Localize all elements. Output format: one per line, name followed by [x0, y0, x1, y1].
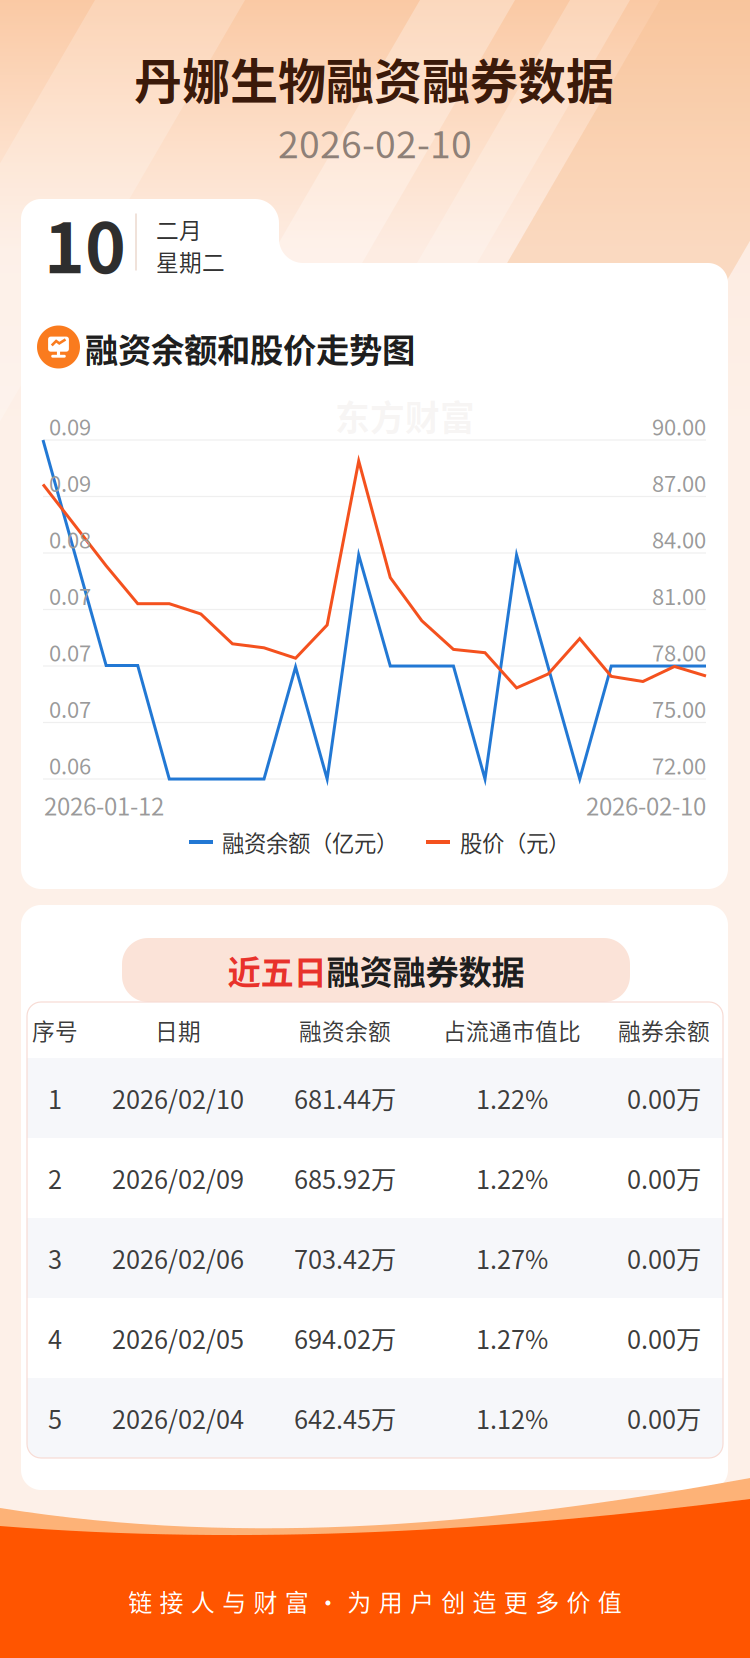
- staticText: 703.42万: [294, 1240, 396, 1276]
- staticText: 10: [44, 193, 126, 293]
- staticText: 84.00: [652, 523, 706, 555]
- staticText: 2026/02/04: [112, 1400, 244, 1436]
- staticText: 融资余额: [299, 1014, 391, 1046]
- staticText: 5: [48, 1400, 62, 1436]
- staticText: 0.07: [49, 636, 91, 668]
- staticText: 1.22%: [476, 1160, 548, 1196]
- staticText: 2026/02/05: [112, 1320, 244, 1356]
- staticText: 2: [48, 1160, 62, 1196]
- staticText: 2026/02/10: [112, 1080, 244, 1116]
- staticText: 链接人与财富·为用户创造更多价值: [128, 1584, 622, 1618]
- staticText: 0.00万: [627, 1160, 701, 1196]
- staticText: 融券余额: [618, 1014, 710, 1046]
- staticText: 694.02万: [294, 1320, 396, 1356]
- staticText: 72.00: [652, 749, 706, 781]
- staticText: 0.09: [49, 410, 91, 442]
- staticText: 2026/02/09: [112, 1160, 244, 1196]
- staticText: 642.45万: [294, 1400, 396, 1436]
- staticText: 75.00: [652, 693, 706, 724]
- staticText: 0.08: [49, 523, 91, 555]
- staticText: 2026-02-10: [586, 788, 706, 822]
- staticText: 3: [48, 1240, 62, 1276]
- staticText: 685.92万: [294, 1160, 396, 1196]
- staticText: 0.00万: [627, 1320, 701, 1356]
- staticText: 681.44万: [294, 1080, 396, 1116]
- staticText: 占流通市值比: [443, 1014, 581, 1046]
- staticText: 1.27%: [476, 1320, 548, 1356]
- staticText: 90.00: [652, 410, 706, 442]
- staticText: 0.06: [49, 749, 91, 781]
- staticText: 序号: [32, 1014, 78, 1046]
- staticText: 星期二: [156, 245, 225, 277]
- staticText: 股价（元）: [460, 826, 570, 858]
- staticText: 0.00万: [627, 1400, 701, 1436]
- staticText: 2026-01-12: [44, 788, 164, 822]
- staticText: 0.07: [49, 580, 91, 611]
- staticText: 东方财富: [335, 391, 475, 441]
- staticText: 日期: [155, 1014, 201, 1046]
- staticText: 81.00: [652, 580, 706, 611]
- staticText: 0.00万: [627, 1240, 701, 1276]
- staticText: 二月: [156, 213, 202, 245]
- staticText: 融资融券数据: [326, 946, 524, 994]
- staticText: 1.22%: [476, 1080, 548, 1116]
- staticText: 融资余额和股价走势图: [85, 324, 415, 372]
- staticText: 0.07: [49, 693, 91, 724]
- staticText: 1.27%: [476, 1240, 548, 1276]
- staticText: 近五日: [227, 946, 326, 994]
- staticText: 丹娜生物融资融券数据: [134, 43, 614, 113]
- staticText: 2026-02-10: [278, 115, 472, 169]
- staticText: 4: [48, 1320, 62, 1356]
- staticText: 78.00: [652, 636, 706, 668]
- staticText: 0.00万: [627, 1080, 701, 1116]
- staticText: 0.09: [49, 467, 91, 498]
- staticText: 87.00: [652, 467, 706, 498]
- staticText: 2026/02/06: [112, 1240, 244, 1276]
- staticText: 1.12%: [476, 1400, 548, 1436]
- staticText: 1: [48, 1080, 62, 1116]
- staticText: 融资余额（亿元）: [222, 826, 398, 858]
